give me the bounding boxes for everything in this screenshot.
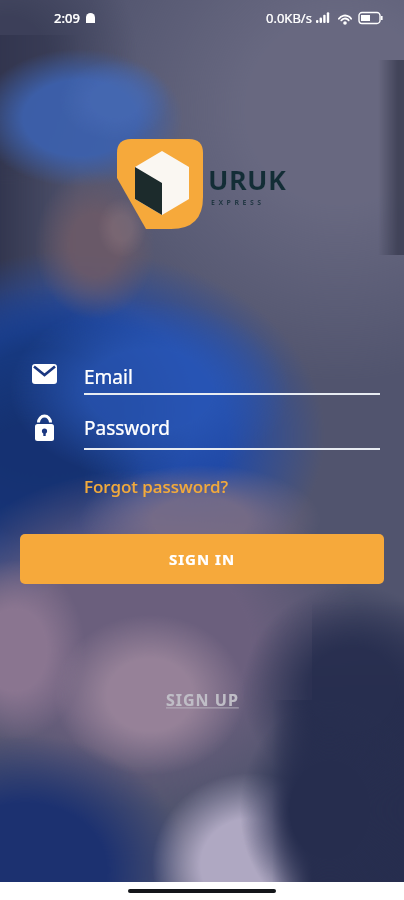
button[interactable]: [32, 364, 57, 384]
button[interactable]: Password: [84, 415, 380, 450]
staticText: 2:09: [54, 9, 80, 27]
button[interactable]: [32, 415, 57, 442]
staticText: URUK: [208, 161, 287, 198]
button[interactable]: Email: [84, 364, 380, 395]
button[interactable]: SIGN IN: [20, 534, 384, 584]
staticText: EXPRESS: [211, 198, 265, 208]
button[interactable]: Forgot password?: [84, 475, 229, 498]
button[interactable]: SIGN UP: [166, 689, 239, 711]
staticText: Email: [84, 364, 133, 390]
staticText: 0.0KB/s: [266, 9, 312, 27]
staticText: SIGN IN: [169, 549, 236, 569]
staticText: Password: [84, 415, 170, 441]
